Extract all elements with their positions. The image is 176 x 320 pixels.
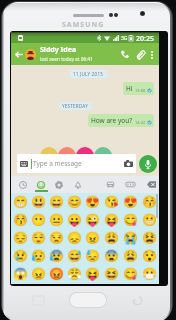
button[interactable]: 😫 [140,229,159,247]
staticText: 😭 [123,231,138,245]
button[interactable]: Recent [14,176,32,193]
button[interactable]: Type a message [20,154,133,173]
button[interactable]: 😝 [83,265,102,283]
button[interactable]: 😷 [140,265,159,283]
button[interactable]: Record voice message [139,155,157,173]
button[interactable]: More options [147,50,156,59]
button[interactable]: 😘 [102,193,121,211]
staticText: 😛 [67,213,82,227]
button[interactable]: 😞 [65,229,83,247]
staticText: 😢 [13,249,28,263]
staticText: 😝 [104,213,119,227]
button[interactable]: 😚 [140,193,159,211]
staticText: last seen today at 06:41 [40,56,94,63]
button[interactable]: 😋 [121,211,140,229]
button[interactable]: Back [14,49,24,59]
button[interactable]: 😠 [83,229,102,247]
button[interactable]: Nature [50,176,68,193]
staticText: How are you? [91,116,133,125]
button[interactable]: 😡 [47,265,65,283]
staticText: 😬 [142,213,157,227]
button[interactable]: Call [119,48,131,60]
button[interactable]: 😬 [140,211,159,229]
staticText: 😯 [142,249,157,263]
staticText: 😥 [31,249,46,263]
button[interactable]: 😐 [47,211,65,229]
button[interactable]: 😨 [102,247,121,265]
button[interactable]: 😭 [121,229,140,247]
button[interactable]: 😰 [47,247,65,265]
staticText: 13:08 [135,88,146,93]
staticText: Hi [126,84,133,93]
staticText: 3G [121,35,128,42]
staticText: 😍 [85,195,100,209]
button[interactable]: Backspace [142,176,160,193]
button[interactable]: How are you? [91,116,152,125]
button[interactable]: 😌 [29,229,47,247]
staticText: Siddy Idea [40,45,77,55]
button[interactable]: 😱 [11,265,29,283]
button[interactable]: 😒 [47,229,65,247]
button[interactable]: 😓 [83,247,102,265]
staticText: 😒 [49,231,64,245]
button[interactable]: Siddy Idea [40,45,119,63]
staticText: 😡 [49,267,64,281]
staticText: 😊 [67,195,82,209]
staticText: 😶 [31,213,46,227]
button[interactable]: Hi [126,84,152,93]
staticText: 😆 [104,267,119,281]
staticText: 😷 [142,267,157,281]
staticText: 😍 [123,195,138,209]
button[interactable]: 😩 [102,229,121,247]
button[interactable]: 😶 [29,211,47,229]
staticText: 😄 [49,195,64,209]
staticText: 😅 [67,249,82,263]
button[interactable]: 😅 [65,247,83,265]
button[interactable]: 😢 [11,247,29,265]
button[interactable]: 😚 [11,211,29,229]
staticText: 😃 [31,195,46,209]
button[interactable]: Attach [134,48,146,60]
staticText: 😔 [13,231,28,245]
button[interactable]: 😥 [29,247,47,265]
button[interactable]: 😃 [29,193,47,211]
staticText: Type a message [33,159,82,168]
button[interactable]: Symbols [121,176,139,193]
staticText: 😞 [67,231,82,245]
button[interactable]: 😯 [140,247,159,265]
button[interactable]: 😄 [47,193,65,211]
button[interactable]: 😍 [121,193,140,211]
staticText: 😤 [67,267,82,281]
button[interactable]: 😔 [11,229,29,247]
button[interactable]: 😩 [121,247,140,265]
staticText: 😐 [49,213,64,227]
button[interactable]: Objects [69,176,87,193]
button[interactable]: 😛 [65,211,83,229]
staticText: 😋 [123,213,138,227]
staticText: 14:22 [135,120,146,125]
staticText: 😌 [31,231,46,245]
staticText: 😜 [85,213,100,227]
button[interactable]: Smileys [32,176,50,193]
button[interactable]: 😊 [65,193,83,211]
staticText: 😓 [85,249,100,263]
staticText: 11 JULY 2015 [73,71,104,77]
staticText: 😨 [104,249,119,263]
staticText: 😫 [142,231,157,245]
staticText: 😚 [142,195,157,209]
button[interactable]: 😜 [83,211,102,229]
button[interactable]: 😝 [102,211,121,229]
staticText: 😝 [85,267,100,281]
button[interactable]: 😠 [29,265,47,283]
staticText: 😩 [123,249,138,263]
staticText: 😱 [13,267,28,281]
button[interactable]: 😁 [11,193,29,211]
button[interactable]: Places [101,176,119,193]
button[interactable]: 😤 [65,265,83,283]
staticText: 😘 [104,195,119,209]
button[interactable]: 😋 [121,265,140,283]
button[interactable]: 😆 [102,265,121,283]
button[interactable]: 😍 [83,193,102,211]
staticText: 😋 [123,267,138,281]
staticText: 😁 [13,195,28,209]
